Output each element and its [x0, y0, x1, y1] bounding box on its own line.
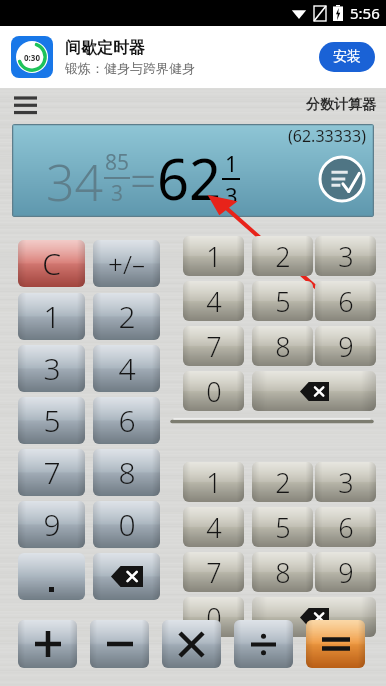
staticText: C — [42, 243, 61, 284]
staticText: 7 — [206, 554, 222, 591]
button[interactable]: Minus — [90, 620, 149, 668]
staticText: 9 — [338, 554, 354, 591]
button[interactable]: 2 — [93, 293, 160, 340]
button[interactable]: 8 — [252, 326, 313, 366]
staticText: 6 — [118, 400, 136, 441]
staticText: 62 — [157, 140, 222, 216]
button[interactable]: 0 — [183, 597, 244, 637]
staticText: +/– — [108, 246, 145, 281]
button[interactable]: 2 — [252, 462, 313, 502]
staticText: 间歇定时器 — [65, 38, 145, 58]
staticText: 0 — [206, 373, 222, 410]
button[interactable]: Equals — [306, 620, 365, 668]
button[interactable]: 8 — [93, 449, 160, 496]
button[interactable] — [18, 553, 85, 600]
button[interactable]: 1 — [183, 236, 244, 276]
button[interactable]: Multiply — [162, 620, 221, 668]
staticText: 5 — [43, 400, 61, 441]
button[interactable]: 0:30 — [0, 26, 386, 88]
button[interactable]: (62.33333) — [12, 124, 374, 217]
staticText: 0 — [118, 504, 136, 545]
button[interactable]: 4 — [183, 281, 244, 321]
staticText: 2 — [275, 238, 291, 275]
staticText: 8 — [275, 328, 291, 365]
button[interactable]: 1 — [183, 462, 244, 502]
staticText: 8 — [275, 554, 291, 591]
button[interactable]: 5 — [252, 281, 313, 321]
button[interactable]: Backspace — [252, 371, 376, 411]
staticText: 3 — [43, 348, 61, 389]
button[interactable]: 6 — [315, 507, 376, 547]
button[interactable]: Menu — [8, 92, 42, 118]
staticText: 分数计算器 — [306, 96, 376, 114]
button[interactable]: C — [18, 240, 85, 287]
button[interactable]: 5 — [18, 397, 85, 444]
staticText: 2 — [118, 296, 136, 337]
staticText: 9 — [43, 504, 61, 545]
staticText: 3 — [338, 464, 354, 501]
button[interactable]: 6 — [93, 397, 160, 444]
button[interactable]: +/– — [93, 240, 160, 287]
staticText: 9 — [338, 328, 354, 365]
staticText: 4 — [206, 283, 222, 320]
button[interactable]: 6 — [315, 281, 376, 321]
button[interactable]: History — [318, 155, 366, 203]
staticText: 5:56 — [350, 3, 380, 23]
staticText: 3 — [338, 238, 354, 275]
button[interactable]: 9 — [315, 326, 376, 366]
staticText: 4 — [206, 509, 222, 546]
staticText: 8 — [118, 452, 136, 493]
button[interactable]: 7 — [183, 326, 244, 366]
staticText: 1 — [43, 296, 61, 337]
staticText: 3 — [111, 179, 124, 208]
button[interactable]: Backspace — [252, 597, 376, 637]
staticText: 85 — [105, 148, 130, 177]
button[interactable]: 8 — [252, 552, 313, 592]
staticText: 1 — [225, 148, 238, 178]
staticText: 6 — [338, 509, 354, 546]
button[interactable]: 4 — [93, 345, 160, 392]
staticText: 1 — [206, 238, 222, 275]
staticText: 6 — [338, 283, 354, 320]
staticText: 4 — [118, 348, 136, 389]
staticText: 3 — [225, 180, 238, 210]
staticText: (62.33333) — [288, 125, 366, 147]
staticText: 7 — [206, 328, 222, 365]
button[interactable]: 2 — [252, 236, 313, 276]
button[interactable]: 7 — [18, 449, 85, 496]
button[interactable]: Backspace — [93, 553, 160, 600]
button[interactable]: 安装 — [319, 42, 375, 72]
staticText: 7 — [43, 452, 61, 493]
button[interactable]: 9 — [315, 552, 376, 592]
button[interactable]: 3 — [315, 462, 376, 502]
button[interactable]: 3 — [315, 236, 376, 276]
button[interactable]: Plus — [18, 620, 77, 668]
staticText: 安装 — [333, 48, 361, 66]
staticText: 2 — [275, 464, 291, 501]
staticText: = — [130, 149, 157, 212]
staticText: 锻炼：健身与跨界健身 — [65, 60, 195, 76]
button[interactable]: 0 — [93, 501, 160, 548]
staticText: 0:30 — [24, 52, 40, 63]
button[interactable]: 4 — [183, 507, 244, 547]
button[interactable]: Divide — [234, 620, 293, 668]
button[interactable]: 7 — [183, 552, 244, 592]
button[interactable]: 3 — [18, 345, 85, 392]
button[interactable]: 9 — [18, 501, 85, 548]
staticText: 5 — [275, 283, 291, 320]
staticText: 1 — [206, 464, 222, 501]
button[interactable]: 0 — [183, 371, 244, 411]
button[interactable]: 1 — [18, 293, 85, 340]
staticText: 5 — [275, 509, 291, 546]
staticText: 0 — [206, 599, 222, 636]
staticText: 34 — [46, 148, 104, 216]
button[interactable]: 5 — [252, 507, 313, 547]
